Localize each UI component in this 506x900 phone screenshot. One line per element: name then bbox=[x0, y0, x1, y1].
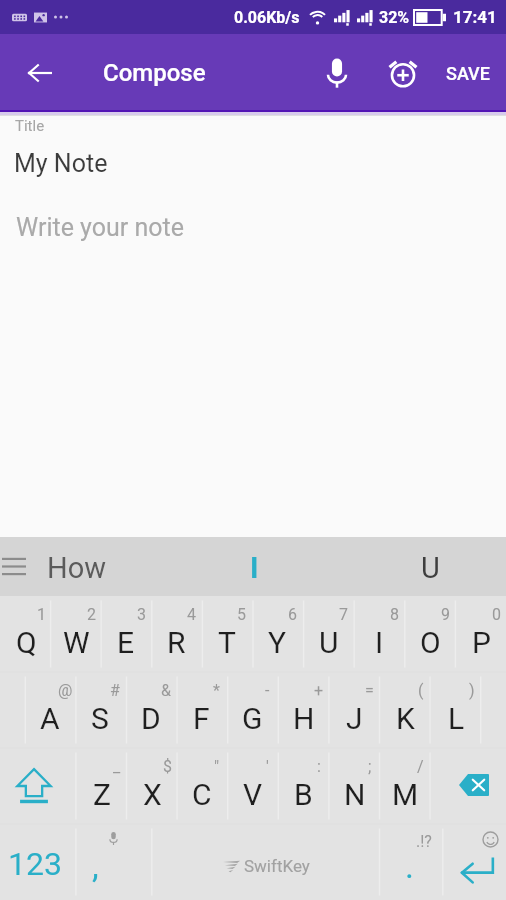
staticText: .!? bbox=[416, 832, 432, 851]
button[interactable]: : bbox=[277, 748, 328, 824]
staticText: 0 bbox=[492, 605, 501, 624]
staticText: , bbox=[92, 846, 99, 886]
button[interactable]: 9 bbox=[404, 596, 455, 672]
staticText: C bbox=[192, 777, 212, 812]
staticText: 123 bbox=[8, 845, 62, 883]
button[interactable]: U bbox=[353, 537, 506, 596]
button[interactable]: .!? bbox=[380, 824, 443, 900]
staticText: @ bbox=[58, 681, 73, 700]
button[interactable]: 4 bbox=[150, 596, 200, 672]
button[interactable]: Keyboard menu bbox=[0, 537, 30, 596]
staticText: SwiftKey bbox=[244, 856, 310, 876]
button[interactable]: Shift bbox=[0, 748, 76, 824]
staticText: I bbox=[250, 551, 259, 585]
button[interactable]: * bbox=[175, 672, 226, 748]
staticText: " bbox=[214, 757, 220, 776]
staticText: Q bbox=[16, 625, 37, 660]
staticText: . bbox=[405, 846, 414, 886]
staticText: ; bbox=[368, 757, 372, 776]
staticText: Y bbox=[268, 625, 287, 660]
staticText: J bbox=[346, 701, 363, 736]
staticText: B bbox=[294, 777, 313, 812]
button[interactable]: SAVE bbox=[446, 34, 490, 112]
staticText: & bbox=[161, 681, 171, 700]
button[interactable]: @ bbox=[24, 672, 74, 748]
button[interactable]: ; bbox=[328, 748, 379, 824]
staticText: W bbox=[63, 625, 90, 660]
staticText: P bbox=[472, 625, 491, 660]
staticText: # bbox=[110, 681, 120, 700]
staticText: Compose bbox=[103, 59, 206, 87]
staticText: F bbox=[193, 701, 210, 736]
staticText: * bbox=[213, 681, 220, 700]
staticText: X bbox=[143, 777, 162, 812]
button[interactable]: 8 bbox=[353, 596, 404, 672]
button[interactable]: Space bbox=[152, 824, 380, 900]
staticText: 8 bbox=[390, 605, 399, 624]
button[interactable]: - bbox=[226, 672, 277, 748]
button[interactable]: How bbox=[30, 537, 200, 596]
staticText: U bbox=[421, 551, 440, 585]
staticText: 17:41 bbox=[453, 7, 497, 27]
staticText: $ bbox=[163, 757, 172, 776]
button[interactable]: 7 bbox=[302, 596, 353, 672]
staticText: T bbox=[218, 625, 236, 660]
staticText: : bbox=[317, 757, 321, 776]
staticText: How bbox=[47, 551, 107, 585]
staticText: 2 bbox=[87, 605, 96, 624]
button[interactable]: 6 bbox=[251, 596, 302, 672]
staticText: 9 bbox=[441, 605, 450, 624]
button[interactable]: Add alarm bbox=[370, 34, 435, 112]
button[interactable]: I bbox=[177, 537, 332, 596]
staticText: Write your note bbox=[16, 213, 184, 242]
staticText: - bbox=[265, 681, 270, 700]
staticText: Title bbox=[15, 117, 45, 135]
button[interactable]: 3 bbox=[100, 596, 150, 672]
button[interactable]: Voice input bbox=[304, 34, 370, 112]
button[interactable]: 0 bbox=[455, 596, 506, 672]
staticText: SAVE bbox=[446, 63, 490, 84]
staticText: M bbox=[392, 777, 419, 812]
button[interactable]: / bbox=[379, 748, 430, 824]
button[interactable]: & bbox=[124, 672, 175, 748]
staticText: N bbox=[344, 777, 366, 812]
staticText: K bbox=[396, 701, 415, 736]
staticText: 4 bbox=[187, 605, 196, 624]
staticText: + bbox=[314, 681, 324, 700]
button[interactable]: ( bbox=[379, 672, 430, 748]
button[interactable]: + bbox=[277, 672, 328, 748]
button[interactable]: Back bbox=[0, 34, 80, 112]
button[interactable]: = bbox=[328, 672, 379, 748]
button[interactable]: , bbox=[76, 824, 152, 900]
staticText: My Note bbox=[14, 149, 108, 178]
staticText: 1 bbox=[37, 605, 46, 624]
button[interactable]: 2 bbox=[50, 596, 100, 672]
staticText: I bbox=[375, 625, 384, 660]
staticText: L bbox=[448, 701, 465, 736]
staticText: A bbox=[40, 701, 60, 736]
button[interactable]: 5 bbox=[200, 596, 251, 672]
staticText: E bbox=[117, 625, 135, 660]
staticText: H bbox=[293, 701, 315, 736]
button[interactable]: _ bbox=[76, 748, 126, 824]
button[interactable]: Backspace bbox=[430, 748, 506, 824]
staticText: 7 bbox=[339, 605, 348, 624]
staticText: S bbox=[91, 701, 109, 736]
button[interactable]: 123 bbox=[0, 824, 76, 900]
button[interactable]: Enter bbox=[443, 824, 506, 900]
button[interactable]: $ bbox=[126, 748, 176, 824]
staticText: O bbox=[420, 625, 441, 660]
staticText: U bbox=[319, 625, 339, 660]
button[interactable]: # bbox=[74, 672, 124, 748]
staticText: 32% bbox=[379, 8, 410, 27]
staticText: ( bbox=[418, 681, 424, 700]
staticText: 5 bbox=[237, 605, 246, 624]
button[interactable]: ) bbox=[430, 672, 481, 748]
staticText: D bbox=[141, 701, 161, 736]
staticText: 0.06Kb/s bbox=[234, 8, 300, 27]
button[interactable]: " bbox=[176, 748, 226, 824]
button[interactable]: ' bbox=[226, 748, 277, 824]
button[interactable]: 1 bbox=[0, 596, 50, 672]
staticText: Z bbox=[93, 777, 111, 812]
staticText: G bbox=[242, 701, 263, 736]
